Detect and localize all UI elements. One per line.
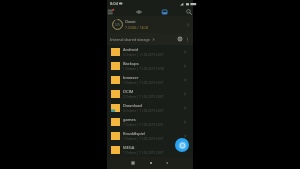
button[interactable]: Back xyxy=(162,158,172,168)
staticText: Download xyxy=(123,103,143,108)
button[interactable]: Select xyxy=(176,35,184,43)
button[interactable]: Search xyxy=(184,7,194,16)
button[interactable]: More options xyxy=(184,36,191,43)
staticText: 2 Ordner | 11.05.2019 20:01 xyxy=(123,95,164,99)
staticText: 1 Ordner | 11.05.2019 20:01 xyxy=(123,137,164,141)
button[interactable]: Windows xyxy=(160,7,170,16)
staticText: games xyxy=(123,117,136,122)
staticText: 4 Ordner | 11.05.2019 20:01 xyxy=(123,109,164,113)
button[interactable]: Knuddlspiel xyxy=(107,129,193,143)
button[interactable]: games xyxy=(107,115,193,129)
staticText: 5 Ordner | 11.05.2019 20:01 xyxy=(123,53,164,57)
staticText: browser xyxy=(123,75,139,80)
staticText: 50% xyxy=(115,23,121,27)
button[interactable]: DCIM xyxy=(107,87,193,101)
button[interactable]: 50% xyxy=(107,16,193,33)
staticText: 1 Ordner | 11.05.2019 20:01 xyxy=(123,151,164,155)
button[interactable]: Recents xyxy=(128,158,138,168)
staticText: 1 Ordner | 11.05.2019 16:58 xyxy=(123,67,164,71)
staticText: Knuddlspiel xyxy=(123,131,146,136)
staticText: Classic xyxy=(125,19,136,24)
staticText: DCIM xyxy=(123,89,134,94)
staticText: MEGA xyxy=(123,145,135,150)
staticText: Internal shared storage xyxy=(110,37,150,42)
staticText: 8:04 xyxy=(110,1,118,6)
button[interactable]: Preview xyxy=(134,7,144,16)
staticText: 1 Ordner | 11.05.2019 20:01 xyxy=(123,81,164,85)
button[interactable]: Android xyxy=(107,45,193,59)
staticText: Backups xyxy=(123,61,139,66)
button[interactable]: browser xyxy=(107,73,193,87)
button[interactable]: Home xyxy=(146,158,156,168)
button[interactable]: Download xyxy=(107,101,193,115)
staticText: Android xyxy=(123,47,138,52)
button[interactable]: Menu xyxy=(106,7,116,16)
button[interactable]: New item xyxy=(175,138,189,152)
button[interactable]: MEGA xyxy=(107,143,193,157)
button[interactable]: Backups xyxy=(107,59,193,73)
staticText: 1 Ordner | 11.05.2019 20:01 xyxy=(123,123,164,127)
staticText: 7.00GB / 14GB xyxy=(125,25,148,30)
